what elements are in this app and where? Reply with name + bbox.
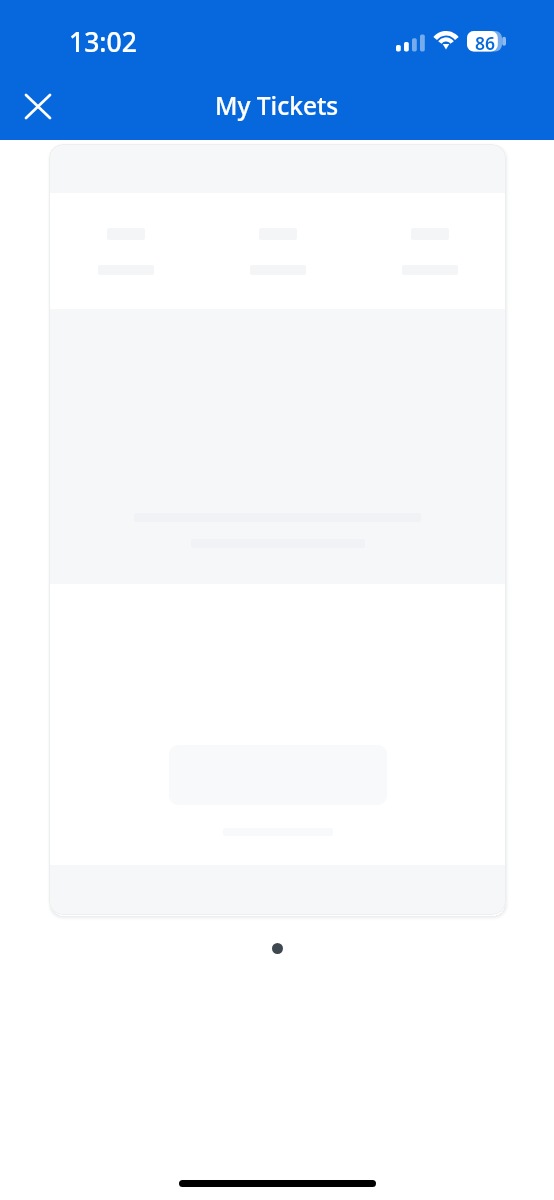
staticText: 86 <box>475 31 496 52</box>
button[interactable]: Close <box>14 82 62 130</box>
staticText: 13:02 <box>69 24 137 60</box>
staticText: My Tickets <box>215 89 339 122</box>
button[interactable]: Page 1 of 1 <box>272 943 283 954</box>
button[interactable]: Ticket <box>49 144 506 915</box>
